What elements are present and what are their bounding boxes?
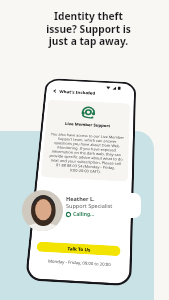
button[interactable]: Heather L. <box>36 193 141 218</box>
staticText: Monday - Friday, 09:00 to 20:00 <box>29 257 130 268</box>
staticText: Support Specialist <box>66 202 113 209</box>
staticText: Talk To Us <box>67 245 91 252</box>
staticText: You also have access to our Live Member … <box>47 132 124 175</box>
button[interactable]: Talk To Us <box>36 241 121 256</box>
staticText: What's Included <box>59 89 96 96</box>
staticText: Calling... <box>73 211 95 218</box>
staticText: Heather L. <box>66 195 95 202</box>
staticText: Live Member Support <box>65 121 111 128</box>
staticText: Identity theft issue? Support is just a … <box>39 9 138 48</box>
button[interactable]: Back <box>50 87 60 95</box>
